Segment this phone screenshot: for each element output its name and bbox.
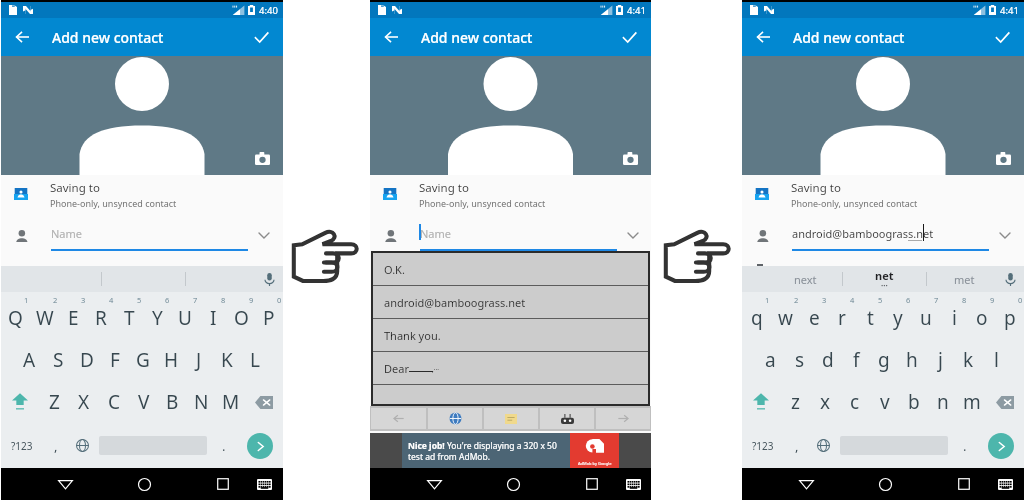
button[interactable]: Change language	[69, 423, 95, 468]
button[interactable]: Recent apps	[205, 468, 241, 500]
button[interactable]: Back	[4, 19, 40, 55]
button[interactable]: Switch keyboard	[249, 468, 279, 500]
button[interactable]: Shift	[1, 381, 39, 423]
button[interactable]: Enter	[988, 433, 1014, 459]
button[interactable]: m	[957, 381, 986, 423]
button[interactable]: Back	[373, 19, 409, 55]
button[interactable]: 3	[59, 294, 87, 338]
button[interactable]: B	[158, 381, 187, 423]
button[interactable]: Translate	[428, 408, 482, 429]
button[interactable]: z	[780, 381, 810, 423]
button[interactable]: Change language	[810, 423, 836, 468]
button[interactable]: ?123	[1, 423, 43, 468]
button[interactable]: Home	[865, 468, 905, 500]
button[interactable]: met	[926, 266, 1000, 292]
button[interactable]: Home	[493, 468, 533, 500]
button[interactable]: j	[926, 338, 954, 381]
button[interactable]: 4	[828, 294, 856, 338]
button[interactable]: .	[952, 423, 978, 468]
button[interactable]: Tools	[540, 408, 594, 429]
button[interactable]: 1	[742, 294, 771, 338]
button[interactable]: 9	[227, 294, 255, 338]
button[interactable]: 4	[87, 294, 115, 338]
button[interactable]: Z	[39, 381, 69, 423]
button[interactable]: Back	[786, 468, 826, 500]
button[interactable]: Back	[45, 468, 85, 500]
button[interactable]: 6	[884, 294, 912, 338]
button[interactable]: Next	[596, 408, 650, 429]
button[interactable]: 2	[30, 294, 59, 338]
button[interactable]: Expand name fields	[253, 225, 275, 245]
button[interactable]: Save	[610, 18, 648, 56]
button[interactable]: h	[898, 338, 926, 381]
button[interactable]: Dear	[373, 352, 648, 384]
button[interactable]: 9	[968, 294, 996, 338]
button[interactable]: Home	[124, 468, 164, 500]
button[interactable]: A	[15, 338, 44, 381]
button[interactable]: J	[185, 338, 213, 381]
button[interactable]: 5	[856, 294, 884, 338]
button[interactable]: n	[928, 381, 957, 423]
button[interactable]: Save	[242, 18, 280, 56]
button[interactable]: Back	[745, 19, 781, 55]
button[interactable]: c	[840, 381, 870, 423]
button[interactable]: C	[99, 381, 129, 423]
button[interactable]: Recent apps	[946, 468, 982, 500]
button[interactable]: Recent apps	[574, 468, 610, 500]
button[interactable]: Take photo	[995, 150, 1012, 167]
button[interactable]: l	[982, 338, 1010, 381]
button[interactable]: Expand name fields	[994, 225, 1016, 245]
button[interactable]: 0	[996, 294, 1024, 338]
button[interactable]: a	[756, 338, 785, 381]
button[interactable]: 3	[800, 294, 828, 338]
button[interactable]: Shift	[742, 381, 780, 423]
button[interactable]: ,	[784, 423, 810, 468]
button[interactable]: d	[814, 338, 842, 381]
button[interactable]: g	[870, 338, 898, 381]
button[interactable]: v	[870, 381, 899, 423]
button[interactable]: android@bamboograss.net	[373, 286, 648, 318]
button[interactable]: G	[129, 338, 157, 381]
button[interactable]: S	[44, 338, 73, 381]
button[interactable]: 2	[771, 294, 800, 338]
button[interactable]: Enter	[247, 433, 273, 459]
button[interactable]: Save	[983, 18, 1021, 56]
button[interactable]: x	[810, 381, 840, 423]
button[interactable]: Backspace	[245, 381, 283, 423]
button[interactable]: 0	[255, 294, 283, 338]
button[interactable]: D	[73, 338, 101, 381]
button[interactable]: Notes	[484, 408, 538, 429]
button[interactable]: 5	[115, 294, 143, 338]
button[interactable]: 7	[171, 294, 199, 338]
button[interactable]: Thank you.	[373, 319, 648, 351]
button[interactable]: L	[241, 338, 269, 381]
button[interactable]: Take photo	[622, 150, 639, 167]
button[interactable]: b	[899, 381, 928, 423]
button[interactable]: 8	[199, 294, 227, 338]
button[interactable]: ?123	[742, 423, 784, 468]
button[interactable]: 7	[912, 294, 940, 338]
button[interactable]: Voice input	[996, 266, 1024, 292]
button[interactable]: net	[842, 266, 926, 292]
button[interactable]: V	[129, 381, 158, 423]
button[interactable]: F	[101, 338, 129, 381]
button[interactable]: Previous	[371, 408, 426, 429]
button[interactable]: N	[187, 381, 216, 423]
button[interactable]: ,	[43, 423, 69, 468]
button[interactable]: Take photo	[254, 150, 271, 167]
button[interactable]: next	[742, 266, 842, 292]
button[interactable]: K	[213, 338, 241, 381]
button[interactable]: Back	[414, 468, 454, 500]
button[interactable]: Backspace	[986, 381, 1024, 423]
button[interactable]: 1	[1, 294, 30, 338]
button[interactable]: M	[216, 381, 245, 423]
button[interactable]: X	[69, 381, 99, 423]
button[interactable]: 8	[940, 294, 968, 338]
button[interactable]: s	[785, 338, 814, 381]
button[interactable]: Switch keyboard	[618, 468, 648, 500]
button[interactable]: f	[842, 338, 870, 381]
button[interactable]: k	[954, 338, 982, 381]
button[interactable]: Voice input	[255, 266, 283, 292]
